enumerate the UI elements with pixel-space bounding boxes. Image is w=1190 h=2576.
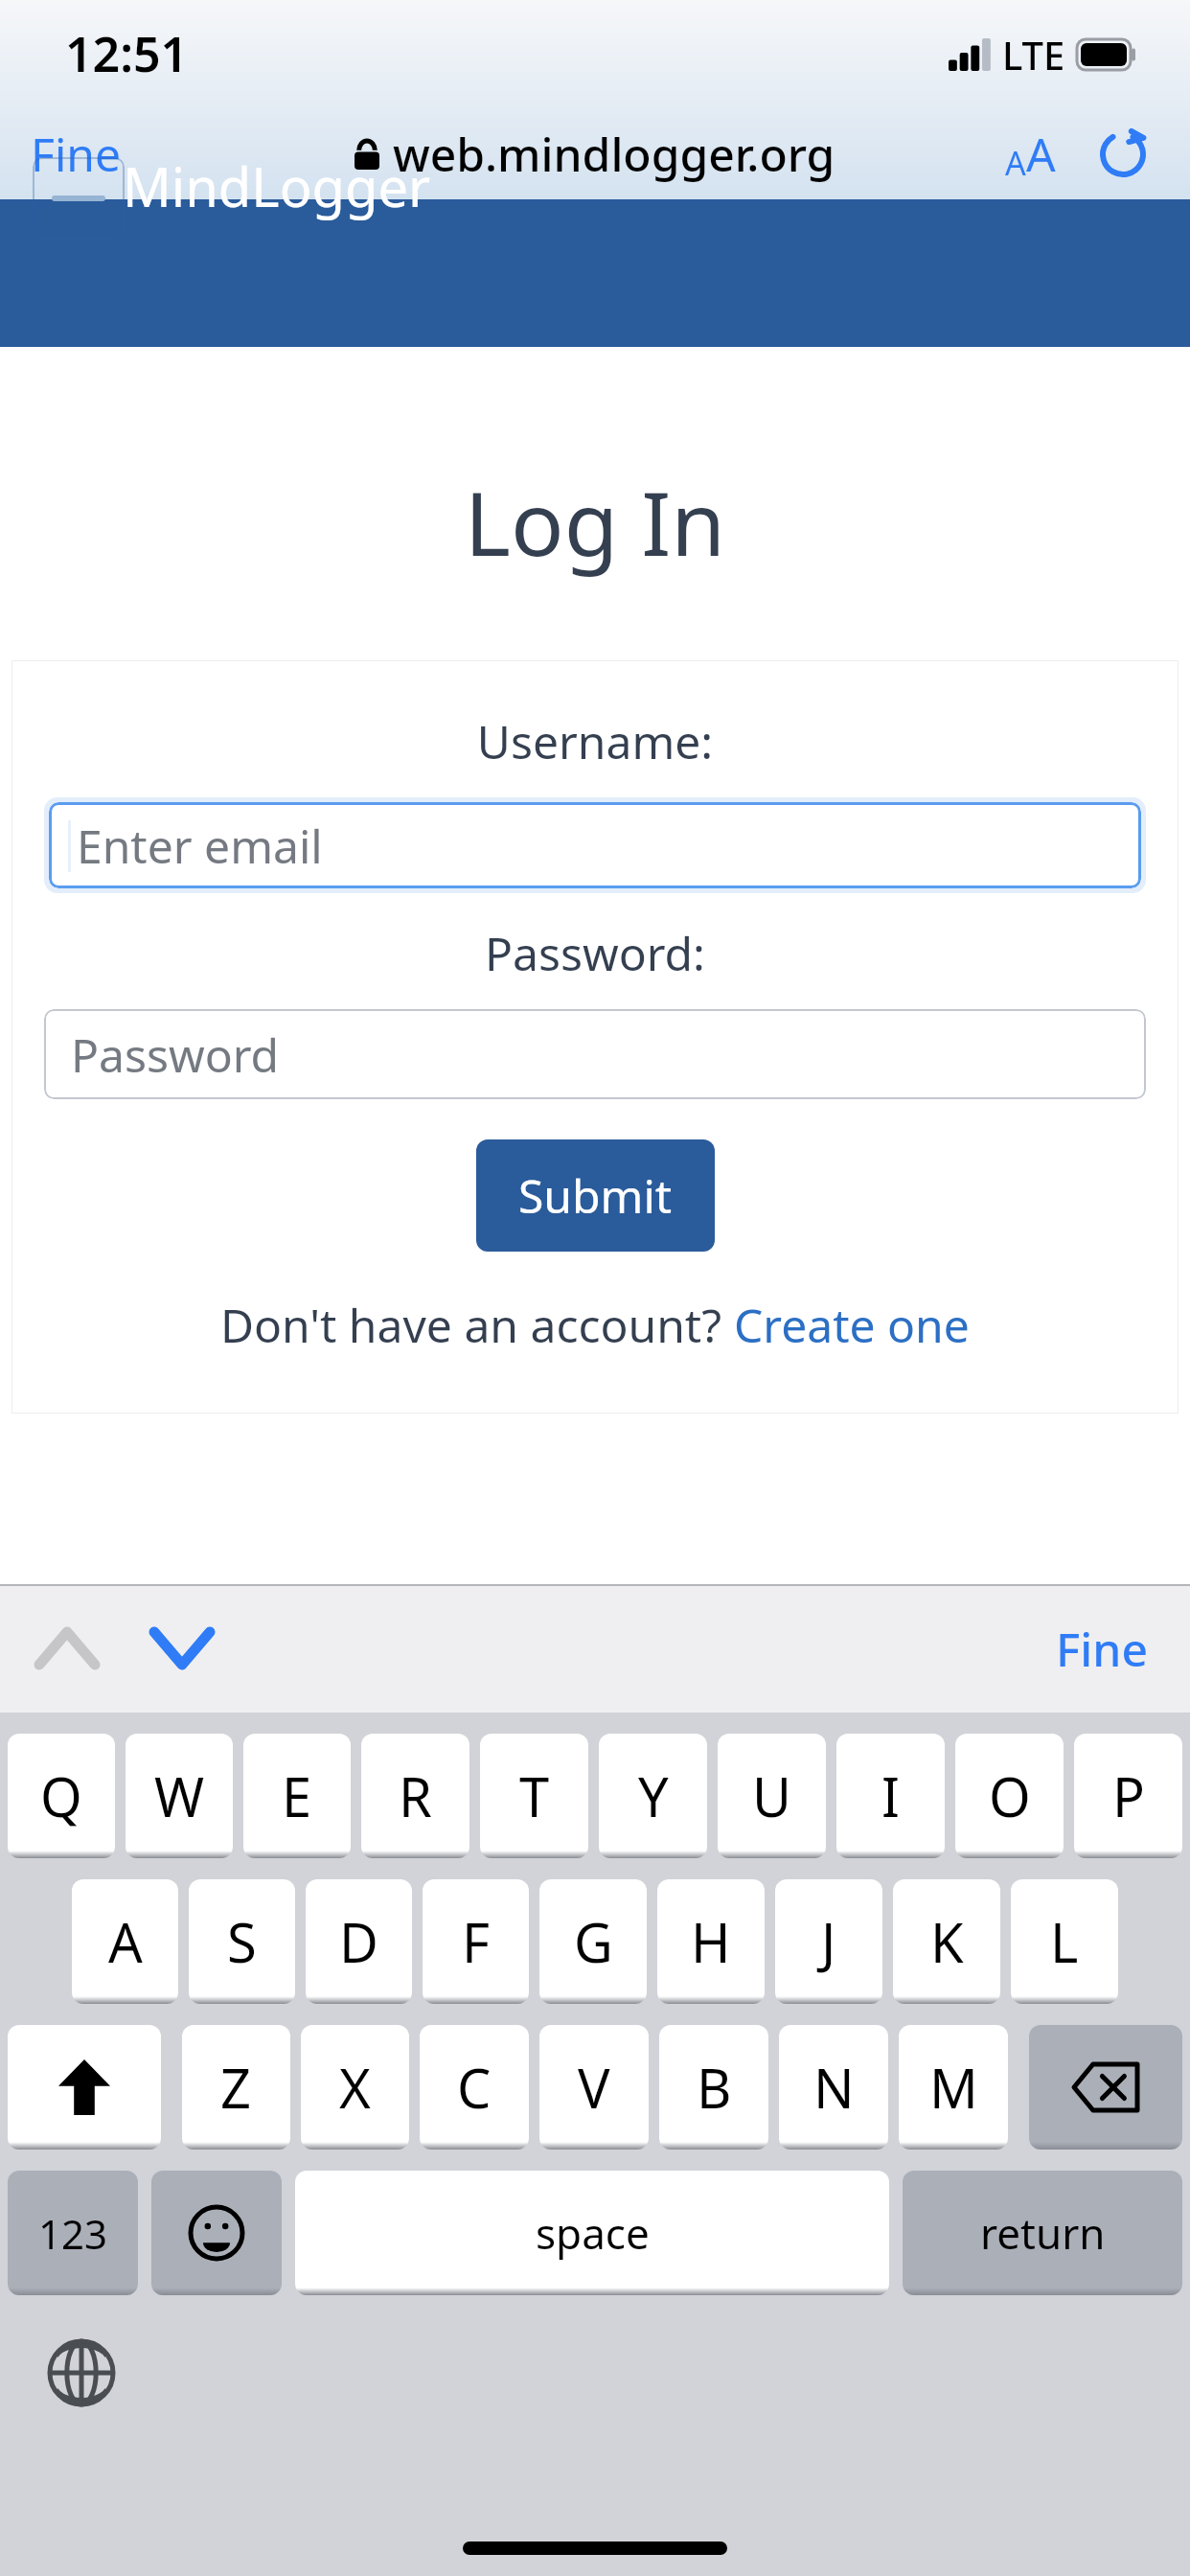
button[interactable]: V	[539, 2025, 649, 2150]
button[interactable]: G	[539, 1879, 647, 2004]
button[interactable]: Text size	[997, 115, 1064, 193]
button[interactable]: Menu	[33, 157, 125, 240]
button[interactable]: O	[955, 1734, 1064, 1858]
staticText: Password	[71, 1023, 280, 1086]
staticText: P	[1112, 1759, 1145, 1832]
button[interactable]: Reload	[1092, 124, 1154, 185]
button[interactable]: Fine	[1046, 1608, 1157, 1690]
staticText: V	[578, 2051, 610, 2124]
button[interactable]: C	[420, 2025, 529, 2150]
button[interactable]: I	[836, 1734, 945, 1858]
staticText: space	[536, 2204, 650, 2262]
staticText: F	[462, 1905, 491, 1978]
button[interactable]: R	[361, 1734, 469, 1858]
staticText: MindLogger	[123, 149, 431, 222]
staticText: Fine	[1056, 1618, 1148, 1680]
button[interactable]: space	[295, 2171, 889, 2295]
button[interactable]: Change keyboard	[36, 2328, 126, 2418]
staticText: X	[339, 2051, 371, 2124]
button[interactable]: H	[657, 1879, 765, 2004]
staticText: return	[980, 2204, 1106, 2262]
button[interactable]: L	[1011, 1879, 1118, 2004]
staticText: Create one	[734, 1294, 970, 1356]
button[interactable]: D	[306, 1879, 412, 2004]
staticText: L	[1050, 1905, 1079, 1978]
staticText: Y	[638, 1759, 669, 1832]
staticText: T	[519, 1759, 550, 1832]
button[interactable]: X	[301, 2025, 409, 2150]
staticText: Z	[220, 2051, 252, 2124]
button[interactable]: 123	[8, 2171, 138, 2295]
staticText: A	[1005, 141, 1026, 185]
staticText: Enter email	[77, 815, 323, 877]
staticText: E	[282, 1759, 312, 1832]
button[interactable]: Y	[599, 1734, 707, 1858]
button[interactable]: Shift	[8, 2025, 161, 2150]
button[interactable]: Enter email	[49, 802, 1141, 888]
staticText: Fine	[31, 123, 122, 185]
button[interactable]: Password	[44, 1009, 1146, 1099]
staticText: Log In	[0, 462, 1190, 582]
staticText: LTE	[1002, 29, 1065, 80]
staticText: J	[821, 1905, 836, 1978]
staticText: G	[574, 1905, 613, 1978]
button[interactable]: Fine	[21, 115, 131, 193]
staticText: S	[227, 1905, 257, 1978]
staticText: 12:51	[65, 21, 189, 86]
staticText: web.mindlogger.org	[393, 123, 835, 185]
button[interactable]: Create one	[734, 1294, 970, 1356]
button[interactable]: Q	[8, 1734, 115, 1858]
staticText: I	[881, 1759, 900, 1832]
button[interactable]: M	[899, 2025, 1008, 2150]
button[interactable]: W	[126, 1734, 233, 1858]
staticText: O	[989, 1759, 1031, 1832]
staticText: U	[752, 1759, 791, 1832]
staticText: B	[697, 2051, 732, 2124]
staticText: Don't have an account?	[220, 1294, 734, 1356]
staticText: 123	[38, 2206, 108, 2261]
button[interactable]: Z	[182, 2025, 290, 2150]
button[interactable]: A	[72, 1879, 178, 2004]
button[interactable]: K	[893, 1879, 1000, 2004]
button[interactable]: B	[659, 2025, 768, 2150]
button[interactable]: N	[779, 2025, 888, 2150]
staticText: D	[339, 1905, 378, 1978]
button[interactable]: Backspace	[1029, 2025, 1182, 2150]
staticText: A	[1026, 123, 1056, 185]
button[interactable]: F	[423, 1879, 529, 2004]
button[interactable]: U	[718, 1734, 826, 1858]
button[interactable]: return	[903, 2171, 1182, 2295]
staticText: K	[930, 1905, 964, 1978]
button[interactable]: J	[775, 1879, 882, 2004]
staticText: A	[108, 1905, 143, 1978]
staticText: N	[813, 2051, 855, 2124]
button[interactable]: Submit	[476, 1139, 715, 1252]
staticText: M	[929, 2051, 978, 2124]
button[interactable]: Emoji	[151, 2171, 282, 2295]
staticText: H	[691, 1905, 731, 1978]
button[interactable]: Previous field	[23, 1604, 111, 1692]
button[interactable]: T	[480, 1734, 588, 1858]
staticText: W	[154, 1759, 205, 1832]
staticText: Username:	[44, 710, 1146, 772]
button[interactable]: P	[1074, 1734, 1182, 1858]
button[interactable]: S	[189, 1879, 295, 2004]
staticText: Submit	[518, 1164, 673, 1227]
staticText: R	[399, 1759, 432, 1832]
button[interactable]: Next field	[138, 1604, 226, 1692]
staticText: Q	[40, 1759, 82, 1832]
staticText: C	[457, 2051, 492, 2124]
staticText: Password:	[44, 922, 1146, 984]
button[interactable]: E	[243, 1734, 351, 1858]
